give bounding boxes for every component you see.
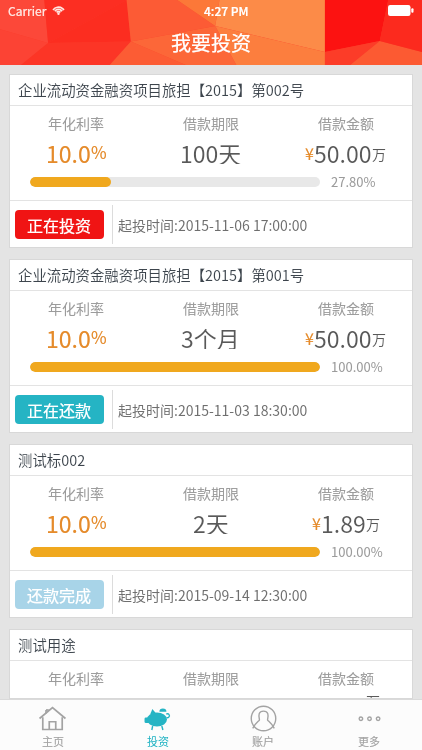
staticText: 年化利率 [48, 668, 104, 688]
staticText: 借款期限 [183, 113, 239, 133]
button[interactable]: 测试用途 [9, 629, 413, 699]
staticText: 借款金额 [318, 298, 374, 318]
staticText: 4:27 PM [204, 2, 249, 19]
staticText: 3个月 [181, 321, 240, 349]
staticText: 主页 [42, 733, 64, 749]
staticText: 借款期限 [183, 298, 239, 318]
staticText: 100.00% [331, 542, 383, 561]
button[interactable]: 企业流动资金融资项目旅担【2015】第002号 [9, 74, 413, 248]
staticText: 年化利率 [48, 113, 104, 133]
staticText: 50.00 [314, 136, 372, 164]
staticText: 投资 [147, 733, 169, 749]
button[interactable]: 账户 [210, 700, 316, 750]
staticText: 27.80% [331, 172, 376, 191]
staticText: 我要投资 [171, 28, 251, 57]
button[interactable]: 正在投资 [15, 210, 104, 239]
staticText: 账户 [252, 733, 274, 749]
staticText: 2天 [193, 691, 229, 699]
staticText: 起投时间:2015-11-03 18:30:00 [118, 400, 308, 420]
button[interactable]: 正在还款 [15, 395, 104, 424]
staticText: 测试用途 [18, 634, 76, 655]
button[interactable]: 还款完成 [15, 580, 104, 609]
staticText: 正在投资 [27, 213, 92, 236]
staticText: 10.0 [46, 321, 91, 349]
staticText: 企业流动资金融资项目旅担【2015】第002号 [18, 79, 305, 100]
staticText: 2天 [193, 506, 229, 534]
staticText: % [91, 324, 107, 349]
staticText: 10.0 [46, 136, 91, 164]
staticText: 1.89 [321, 691, 366, 699]
staticText: 起投时间:2015-11-06 17:00:00 [118, 215, 308, 235]
button[interactable]: 投资 [105, 700, 210, 750]
button[interactable]: 主页 [0, 700, 105, 750]
staticText: ¥ [312, 691, 321, 699]
staticText: 借款金额 [318, 113, 374, 133]
staticText: % [91, 139, 107, 164]
staticText: % [91, 509, 107, 534]
staticText: 50.00 [314, 321, 372, 349]
staticText: 100.00% [331, 357, 383, 376]
staticText: 1.89 [321, 506, 366, 534]
staticText: 起投时间:2015-09-14 12:30:00 [118, 585, 308, 605]
staticText: 更多 [358, 733, 380, 749]
staticText: 借款期限 [183, 483, 239, 503]
staticText: 还款完成 [27, 583, 92, 606]
staticText: 借款金额 [318, 668, 374, 688]
staticText: 万 [372, 329, 386, 349]
staticText: 正在还款 [27, 398, 92, 421]
staticText: % [91, 691, 107, 699]
staticText: 测试标002 [18, 449, 86, 470]
button[interactable]: 企业流动资金融资项目旅担【2015】第001号 [9, 259, 413, 433]
staticText: ¥ [312, 511, 321, 534]
staticText: 万 [366, 514, 380, 534]
button[interactable]: 测试标002 [9, 444, 413, 618]
staticText: 年化利率 [48, 483, 104, 503]
staticText: 10.0 [46, 691, 91, 699]
staticText: Carrier [8, 2, 47, 19]
staticText: 万 [372, 144, 386, 164]
button[interactable]: 更多 [316, 700, 422, 750]
staticText: ¥ [305, 326, 314, 349]
staticText: 万 [366, 691, 380, 699]
staticText: 10.0 [46, 506, 91, 534]
staticText: 企业流动资金融资项目旅担【2015】第001号 [18, 264, 305, 285]
staticText: 借款金额 [318, 483, 374, 503]
staticText: 100天 [180, 136, 242, 164]
staticText: 年化利率 [48, 298, 104, 318]
staticText: ¥ [305, 141, 314, 164]
staticText: 借款期限 [183, 668, 239, 688]
